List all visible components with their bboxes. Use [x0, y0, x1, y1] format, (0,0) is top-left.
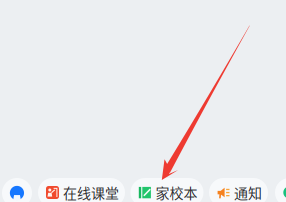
- button[interactable]: 在线课堂: [38, 178, 125, 202]
- button[interactable]: 班级圈: [275, 178, 286, 202]
- staticText: 在线课堂: [63, 182, 119, 202]
- staticText: 通知: [234, 182, 262, 202]
- button[interactable]: 助手: [2, 178, 32, 202]
- staticText: 家校本: [155, 182, 197, 202]
- button[interactable]: 通知: [209, 178, 268, 202]
- button[interactable]: 家校本: [130, 178, 203, 202]
